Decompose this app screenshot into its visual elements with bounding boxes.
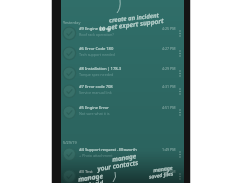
staticText: 4:27 PM — [162, 46, 176, 51]
button[interactable]: #7 Error code 708 — [61, 81, 184, 101]
staticText: your incid — [73, 178, 104, 183]
staticText: Roof rack operation? — [79, 32, 114, 37]
staticText: 4:31 PM — [162, 84, 176, 89]
staticText: Service manual link — [79, 90, 112, 95]
staticText: 4:29 PM — [162, 66, 176, 71]
staticText: create an incident — [109, 11, 159, 25]
staticText: saved files — [149, 170, 174, 181]
staticText: Not sure what it is — [79, 111, 110, 116]
button[interactable]: #6 Error Code 180 — [61, 43, 184, 63]
button[interactable]: #9 Engine set up — [61, 23, 184, 43]
staticText: your contacts — [97, 158, 139, 173]
staticText: #3 Test — [79, 169, 93, 175]
button[interactable]: #5 Engine Error — [61, 102, 184, 122]
staticText: #9 Engine set up — [79, 26, 111, 32]
staticText: Test message — [79, 175, 102, 180]
staticText: manage — [77, 171, 103, 183]
staticText: 5/29/19 — [63, 140, 77, 145]
staticText: 4:51 PM — [162, 105, 176, 110]
staticText: #8 Installation | 178-3 — [79, 66, 122, 72]
staticText: + Photo attachment — [79, 153, 113, 158]
staticText: 1:49 PM — [162, 147, 176, 152]
button[interactable]: #3 Test — [61, 166, 184, 183]
staticText: #7 Error code 708 — [79, 84, 113, 90]
staticText: #5 Engine Error — [79, 105, 109, 111]
staticText: manage — [153, 164, 173, 173]
staticText: Yesterday — [63, 20, 81, 25]
staticText: manage — [111, 151, 137, 164]
staticText: #6 Error Code 180 — [79, 46, 114, 52]
staticText: Torque spec needed — [79, 72, 114, 77]
button[interactable]: #8 Installation | 178-3 — [61, 63, 184, 83]
staticText: 4:25 PM — [162, 26, 176, 31]
staticText: 1:12 PM — [162, 169, 176, 174]
staticText: to get expert support — [99, 16, 164, 33]
staticText: Tech support needed — [79, 52, 115, 57]
staticText: #4 Support request - Ellsworth — [79, 147, 137, 153]
button[interactable]: #4 Support request - Ellsworth — [61, 144, 184, 164]
